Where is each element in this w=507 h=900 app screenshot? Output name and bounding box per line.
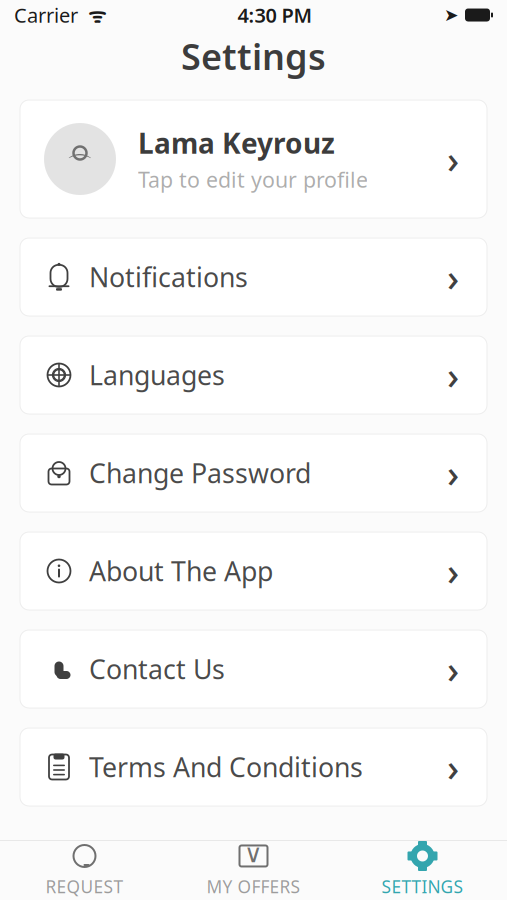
staticText: ᯤ (78, 2, 106, 28)
staticText: Change Password (89, 455, 311, 491)
button[interactable]: About The App (20, 532, 487, 610)
staticText: REQUEST (45, 875, 123, 898)
staticText: › (447, 252, 459, 302)
staticText: Tap to edit your profile (138, 165, 368, 194)
staticText: Settings (181, 32, 326, 80)
button[interactable]: SETTINGS (338, 835, 507, 900)
staticText: › (447, 134, 459, 184)
staticText: SETTINGS (381, 875, 463, 898)
button[interactable]: Languages (20, 336, 487, 414)
staticText: ➤ (444, 5, 459, 25)
staticText: › (447, 448, 459, 498)
button[interactable]: Notifications (20, 238, 487, 316)
staticText: Carrier (14, 2, 78, 28)
button[interactable]: REQUEST (0, 835, 169, 900)
staticText: › (447, 742, 459, 792)
staticText: ⌒ (66, 150, 93, 183)
staticText: Terms And Conditions (89, 749, 363, 785)
button[interactable]: ∨ (169, 835, 338, 900)
staticText: Languages (89, 357, 225, 393)
staticText: Notifications (89, 259, 248, 295)
staticText: About The App (89, 553, 273, 589)
staticText: › (447, 644, 459, 694)
staticText: 4:30 PM (237, 2, 312, 28)
button[interactable]: Change Password (20, 434, 487, 512)
staticText: › (447, 546, 459, 596)
staticText: Contact Us (89, 651, 225, 687)
staticText: Lama Keyrouz (138, 124, 335, 161)
button[interactable]: Terms And Conditions (20, 728, 487, 806)
staticText: ∨ (244, 839, 263, 868)
staticText: MY OFFERS (206, 875, 300, 898)
button[interactable]: 📞 (20, 630, 487, 708)
staticText: › (447, 350, 459, 400)
button[interactable]: ⌒ (20, 100, 487, 218)
